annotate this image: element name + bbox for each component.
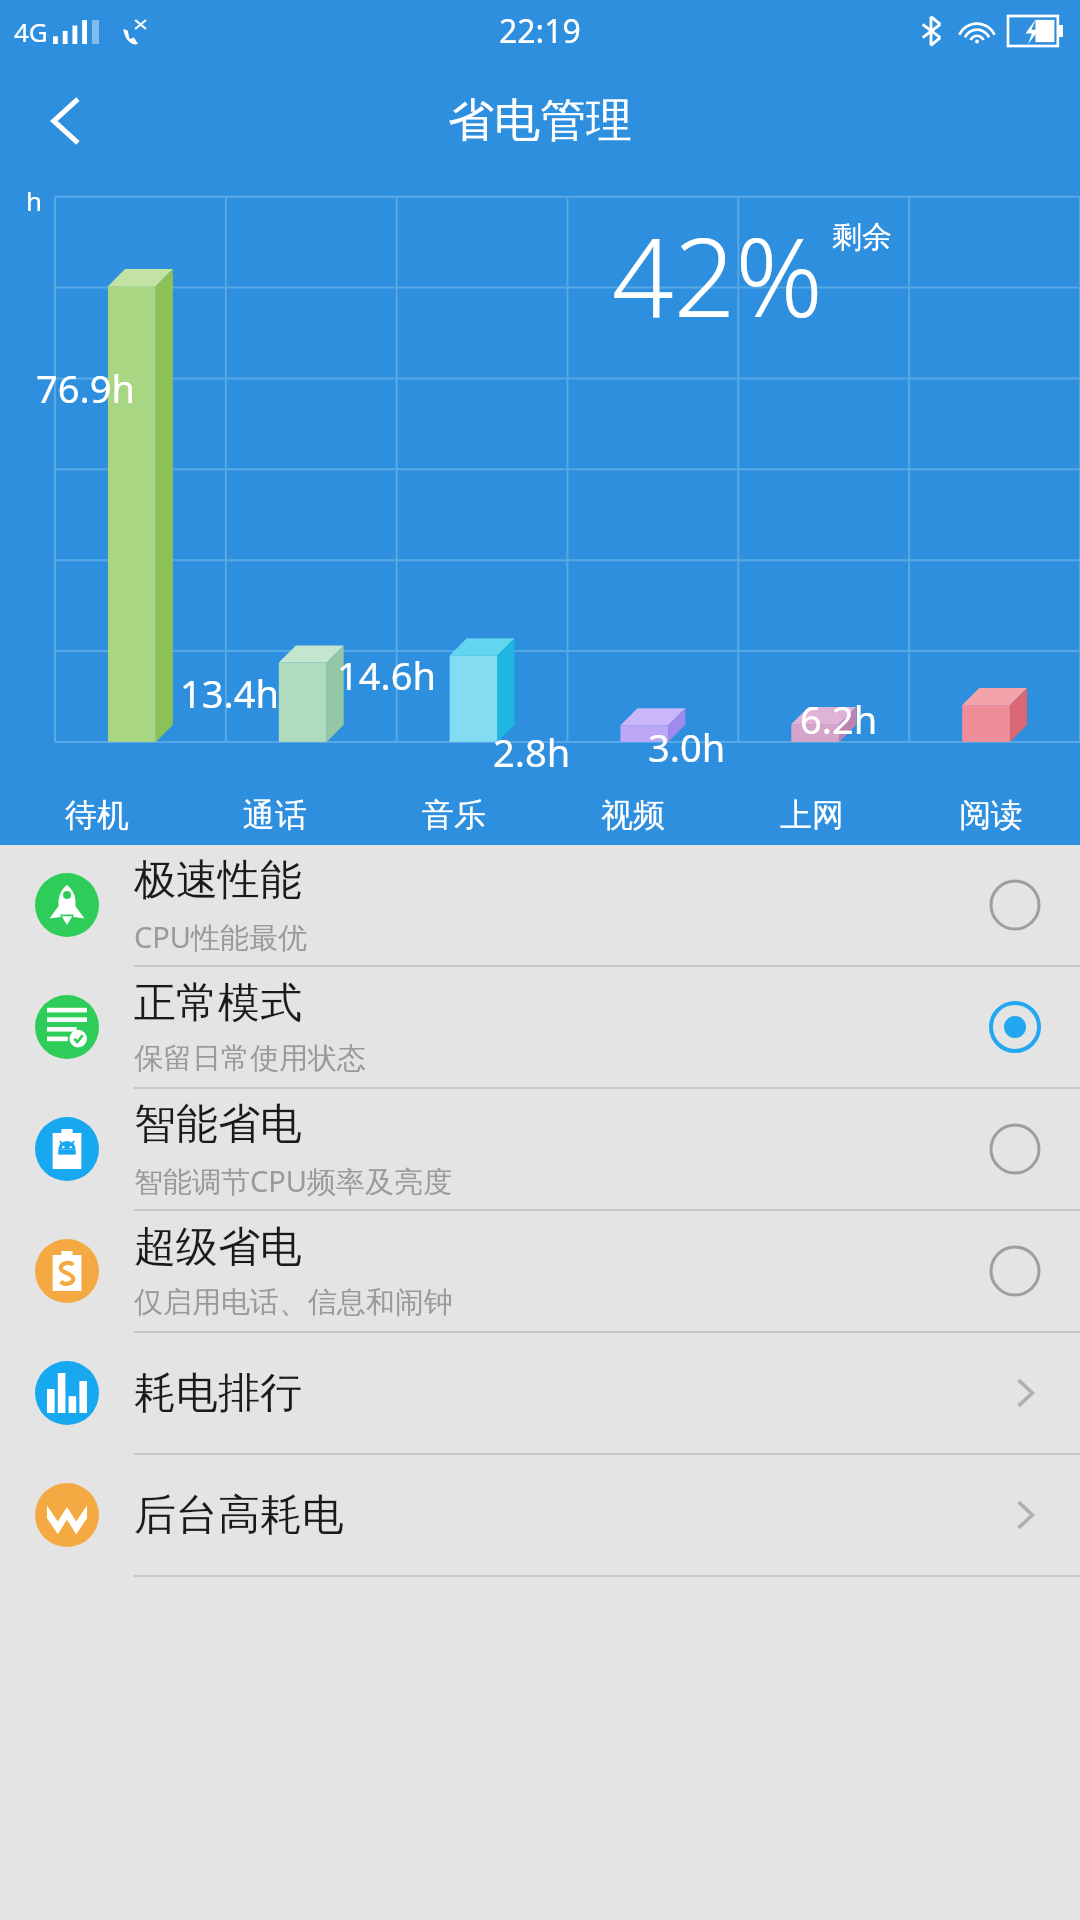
staticText: 6.2h: [800, 693, 878, 745]
staticText: 13.4h: [180, 667, 279, 719]
staticText: 省电管理: [448, 92, 632, 150]
staticText: 22:19: [499, 9, 581, 53]
other: Bluetooth: [920, 15, 942, 47]
staticText: 阅读: [959, 795, 1023, 835]
button[interactable]: 后台高耗电: [0, 1455, 1080, 1575]
staticText: 后台高耗电: [134, 1489, 344, 1542]
other: Battery charging: [1008, 16, 1064, 46]
staticText: 2.8h: [493, 726, 571, 778]
staticText: 42%: [612, 202, 824, 349]
button[interactable]: 正常模式: [0, 967, 1080, 1087]
staticText: 仅启用电话、信息和闹钟: [134, 1284, 453, 1321]
staticText: 极速性能: [134, 854, 302, 907]
staticText: 视频: [601, 795, 665, 835]
staticText: 3.0h: [648, 721, 726, 773]
staticText: 上网: [780, 795, 844, 835]
other: Missed call: [119, 17, 149, 47]
button[interactable]: 耗电排行: [0, 1333, 1080, 1453]
staticText: h: [26, 183, 43, 218]
button[interactable]: Back: [28, 82, 106, 160]
button[interactable]: 极速性能: [0, 845, 1080, 965]
staticText: 通话: [243, 795, 307, 835]
staticText: 超级省电: [134, 1221, 302, 1274]
staticText: 剩余: [832, 218, 892, 256]
staticText: 76.9h: [36, 362, 135, 414]
staticText: 待机: [65, 795, 129, 835]
other: Wi-Fi: [958, 16, 996, 46]
staticText: 正常模式: [134, 977, 302, 1030]
staticText: 智能调节CPU频率及亮度: [134, 1161, 453, 1201]
staticText: CPU性能最优: [134, 917, 308, 957]
staticText: 保留日常使用状态: [134, 1040, 366, 1077]
staticText: 音乐: [422, 795, 486, 835]
button[interactable]: 智能省电: [0, 1089, 1080, 1209]
staticText: 智能省电: [134, 1098, 302, 1151]
staticText: 4G: [14, 14, 48, 49]
staticText: 耗电排行: [134, 1367, 302, 1420]
staticText: 14.6h: [337, 649, 436, 701]
button[interactable]: 超级省电: [0, 1211, 1080, 1331]
